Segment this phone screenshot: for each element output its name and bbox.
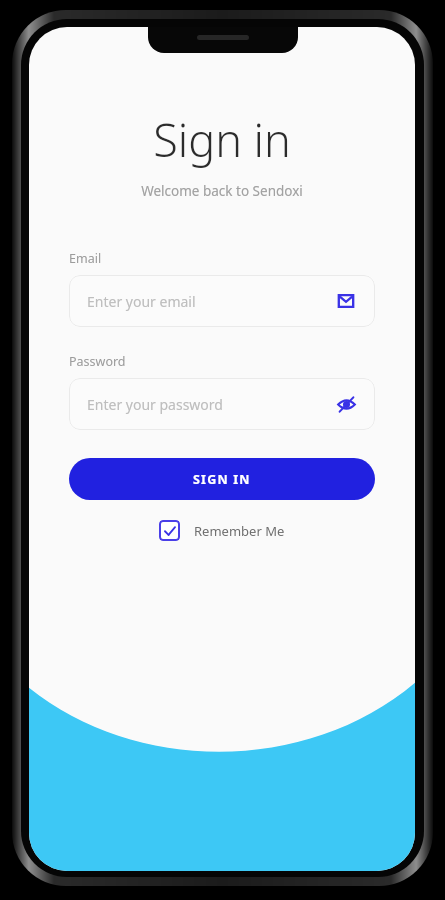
staticText: SIGN IN — [193, 471, 251, 488]
button[interactable]: Enter your email — [69, 275, 375, 327]
staticText: Welcome back to Sendoxi — [29, 182, 415, 200]
button[interactable]: Email — [335, 290, 357, 312]
staticText: Password — [69, 353, 126, 370]
staticText: Sign in — [29, 109, 415, 170]
staticText: Enter your password — [87, 395, 335, 414]
button[interactable]: Remember Me — [157, 518, 287, 543]
button[interactable]: Enter your password — [69, 378, 375, 430]
button[interactable]: Show password — [335, 393, 357, 415]
staticText: Enter your email — [87, 292, 335, 311]
staticText: Email — [69, 250, 102, 267]
staticText: Remember Me — [194, 522, 285, 540]
button[interactable]: SIGN IN — [69, 458, 375, 500]
